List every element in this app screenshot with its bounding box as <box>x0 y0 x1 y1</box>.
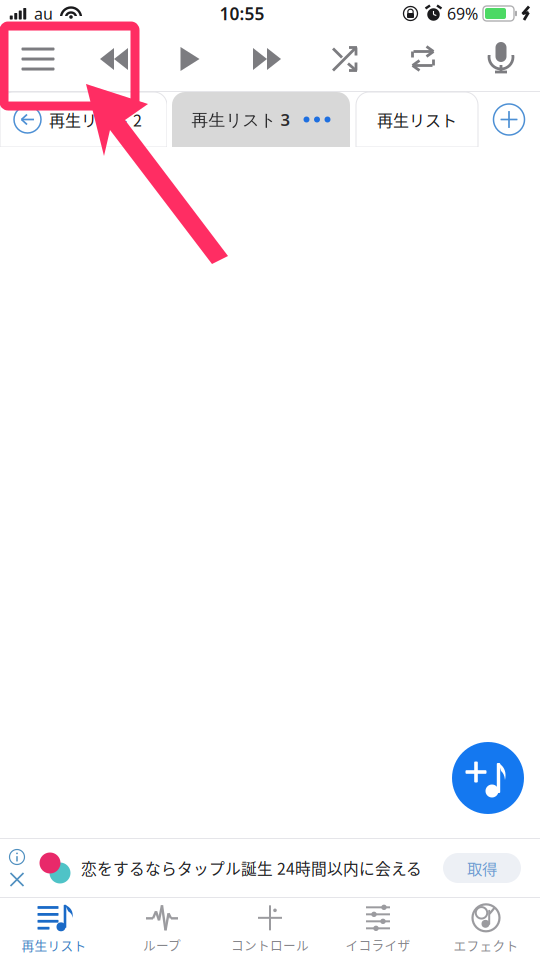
button[interactable]: Shuffle <box>306 27 384 91</box>
button[interactable]: Add playlist <box>478 92 540 147</box>
staticText: 再生リスト <box>377 108 457 131</box>
staticText: 再生リスト 2 <box>49 108 142 131</box>
button[interactable]: 再生リスト 3 <box>172 92 350 147</box>
button[interactable]: 取得 <box>443 853 521 883</box>
staticText: エフェクト <box>453 936 518 954</box>
button[interactable]: Play <box>152 27 228 91</box>
staticText: 再生リスト 3 <box>191 108 290 131</box>
button[interactable]: 再生リスト <box>0 898 108 960</box>
staticText: イコライザ <box>345 935 410 954</box>
button[interactable]: コントロール <box>216 898 324 960</box>
staticText: 再生リスト <box>21 936 86 954</box>
button[interactable]: Repeat <box>384 27 462 91</box>
staticText: 取得 <box>467 857 497 879</box>
staticText: au <box>34 3 53 24</box>
button[interactable]: 再生リスト 2 <box>0 92 167 147</box>
button[interactable]: Menu <box>0 27 76 91</box>
button[interactable]: Fast forward <box>228 27 306 91</box>
staticText: コントロール <box>231 935 309 954</box>
button[interactable]: イコライザ <box>324 898 432 960</box>
button[interactable]: Rewind <box>76 27 152 91</box>
button[interactable]: 再生リスト <box>356 92 478 147</box>
staticText: 10:55 <box>219 2 264 25</box>
staticText: ループ <box>143 935 181 954</box>
button[interactable]: ループ <box>108 898 216 960</box>
staticText: 69% <box>447 3 478 24</box>
button[interactable]: Voice search <box>462 27 540 91</box>
button[interactable]: エフェクト <box>432 898 540 960</box>
staticText: 恋をするならタップル誕生 24時間以内に会える <box>81 857 422 879</box>
